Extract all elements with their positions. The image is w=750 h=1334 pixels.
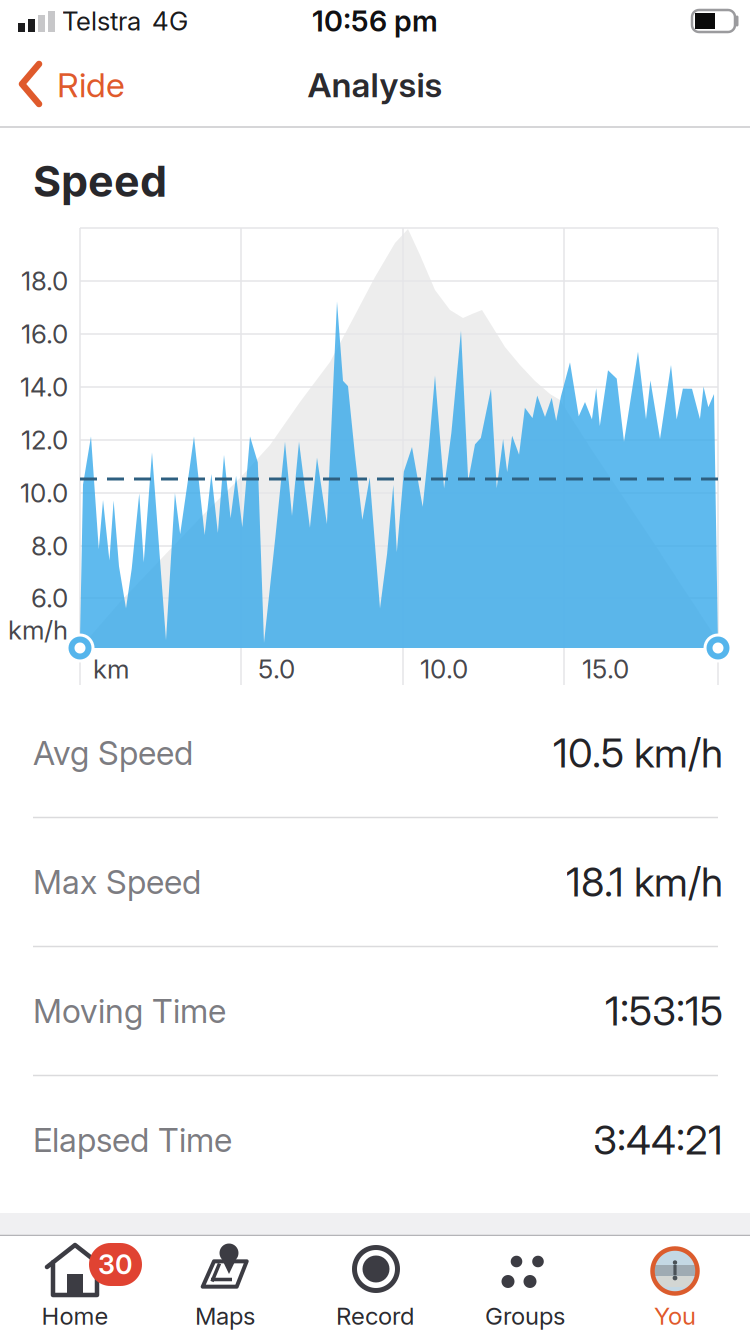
staticText: km: [93, 653, 129, 685]
staticText: Analysis: [307, 64, 442, 105]
button[interactable]: Groups: [450, 1236, 600, 1334]
staticText: 10.0: [420, 653, 468, 685]
staticText: 18.0: [21, 265, 68, 297]
staticText: 3:44:21: [593, 1116, 723, 1164]
staticText: 8.0: [31, 530, 68, 562]
staticText: Ride: [57, 64, 125, 105]
staticText: 14.0: [20, 371, 68, 403]
staticText: Groups: [485, 1301, 565, 1330]
staticText: 16.0: [21, 318, 68, 350]
staticText: 18.1 km/h: [566, 858, 723, 906]
staticText: 6.0: [31, 582, 68, 614]
staticText: Moving Time: [33, 991, 226, 1031]
staticText: Telstra: [62, 5, 141, 37]
staticText: 15.0: [582, 653, 629, 685]
staticText: You: [654, 1301, 696, 1330]
staticText: 5.0: [258, 653, 295, 685]
staticText: Speed: [33, 155, 167, 207]
staticText: Elapsed Time: [33, 1120, 232, 1160]
staticText: 30: [98, 1248, 133, 1281]
staticText: 1:53:15: [605, 987, 723, 1035]
button[interactable]: You: [600, 1236, 750, 1334]
staticText: Record: [336, 1301, 414, 1330]
button[interactable]: Maps: [150, 1236, 300, 1334]
staticText: Max Speed: [33, 862, 201, 902]
button[interactable]: Record: [300, 1236, 450, 1334]
staticText: Maps: [195, 1301, 255, 1330]
staticText: 4G: [152, 5, 188, 37]
staticText: Home: [41, 1301, 108, 1330]
staticText: 12.0: [21, 424, 68, 456]
staticText: Avg Speed: [33, 733, 193, 773]
staticText: 10.0: [20, 477, 68, 509]
staticText: 10.5 km/h: [553, 729, 723, 777]
staticText: km/h: [8, 614, 68, 646]
button[interactable]: Ride: [0, 42, 210, 126]
staticText: 10:56 pm: [312, 3, 438, 39]
button[interactable]: 30: [0, 1236, 150, 1334]
